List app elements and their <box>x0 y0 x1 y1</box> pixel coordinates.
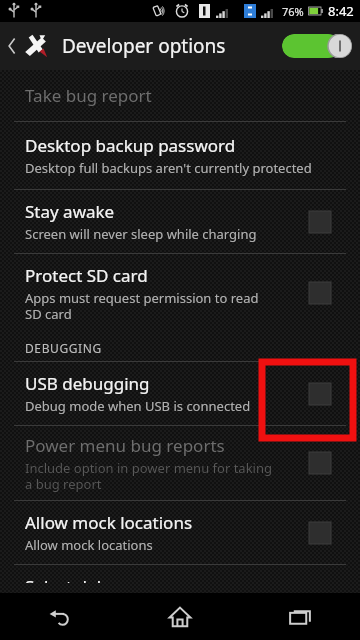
staticText: Developer options <box>62 33 226 59</box>
button[interactable]: Power menu bug reports <box>0 426 360 500</box>
button[interactable]: Desktop backup password <box>0 122 360 189</box>
staticText: Debug mode when USB is connected <box>25 397 251 415</box>
button[interactable]: Allow mock locations <box>0 501 360 564</box>
button[interactable]: Back <box>0 593 120 640</box>
staticText: Allow mock locations <box>25 511 193 534</box>
staticText: Screen will never sleep while charging <box>25 225 257 243</box>
staticText: Desktop backup password <box>25 134 236 157</box>
button[interactable]: Protect SD card <box>0 254 360 332</box>
staticText: Select debug app <box>25 575 163 583</box>
staticText: USB debugging <box>25 372 150 395</box>
button[interactable]: Back <box>0 26 54 66</box>
button[interactable]: Home <box>120 593 240 640</box>
staticText: Stay awake <box>25 200 115 223</box>
button[interactable]: Developer options on <box>274 26 360 66</box>
staticText: Desktop full backups aren't currently pr… <box>25 159 312 177</box>
staticText: DEBUGGING <box>25 340 102 356</box>
button[interactable]: USB debugging <box>0 362 360 425</box>
staticText: Take bug report <box>25 84 152 107</box>
staticText: Protect SD card <box>25 264 148 287</box>
button[interactable]: Recent apps <box>240 593 360 640</box>
button[interactable]: Select debug app <box>0 565 360 593</box>
staticText: 8:42 <box>328 2 354 20</box>
staticText: 76% <box>282 4 304 19</box>
button[interactable]: Stay awake <box>0 190 360 253</box>
staticText: Apps must request permission to read SD … <box>25 289 259 322</box>
staticText: Allow mock locations <box>25 536 153 554</box>
button[interactable]: Take bug report <box>0 70 360 121</box>
staticText: Include option in power menu for taking … <box>25 459 272 492</box>
staticText: Power menu bug reports <box>25 434 225 457</box>
